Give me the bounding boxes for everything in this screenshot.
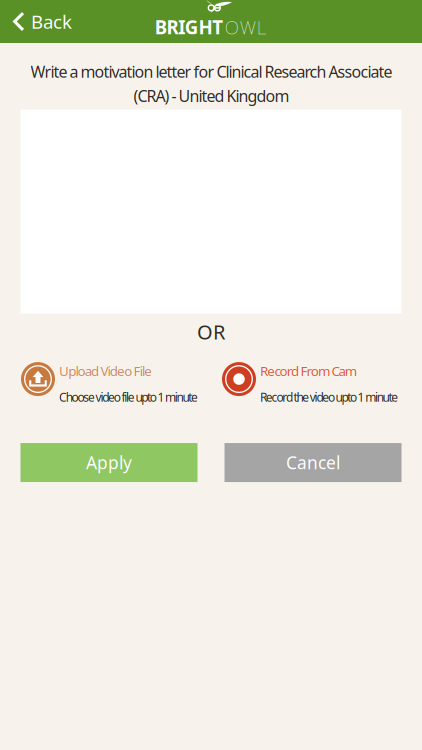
- button[interactable]: Upload Video File: [21, 360, 201, 404]
- button[interactable]: Back: [0, 0, 84, 43]
- button[interactable]: Cancel: [224, 443, 401, 482]
- staticText: Apply: [86, 451, 132, 474]
- staticText: OR: [197, 318, 225, 345]
- staticText: Upload Video File: [59, 362, 152, 380]
- staticText: Write a motivation letter for Clinical R…: [30, 61, 392, 82]
- button[interactable]: Apply: [20, 443, 197, 482]
- staticText: Choose video file upto 1 minute: [59, 389, 198, 405]
- staticText: (CRA) - United Kingdom: [133, 85, 289, 106]
- button[interactable]: Record From Cam: [222, 360, 402, 404]
- staticText: BRIGHT: [155, 15, 223, 39]
- staticText: Cancel: [286, 451, 340, 474]
- staticText: OWL: [225, 15, 266, 39]
- staticText: Record From Cam: [260, 362, 357, 380]
- staticText: Back: [31, 9, 72, 34]
- staticText: Record the video upto 1 minute: [260, 389, 398, 405]
